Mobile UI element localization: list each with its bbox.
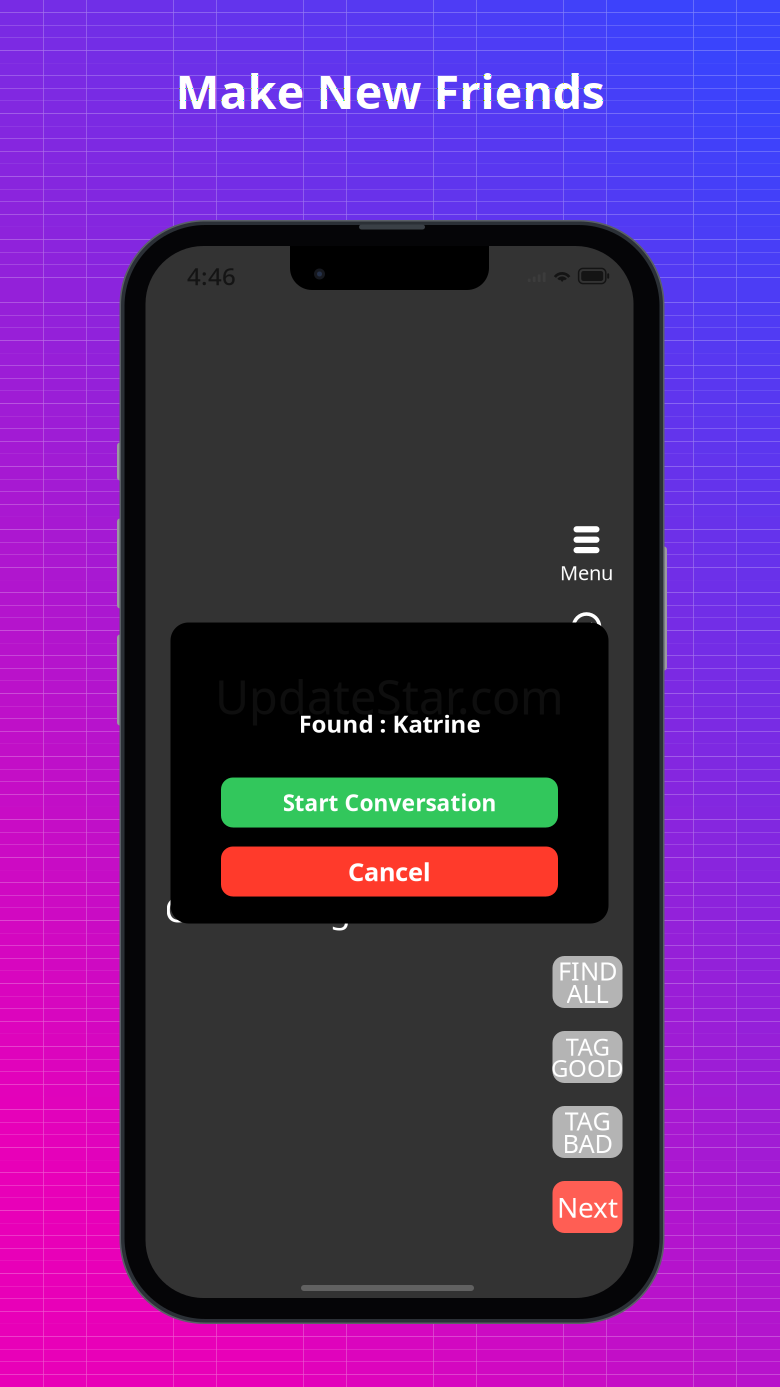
staticText: TAG [564, 1104, 610, 1138]
button[interactable]: TAG [552, 1106, 622, 1158]
button[interactable]: FIND [552, 956, 622, 1008]
staticText: TAG [565, 1030, 609, 1062]
staticText: Connecting… [164, 886, 377, 932]
staticText: Start Conversation [282, 787, 496, 817]
button[interactable]: TAG [552, 1031, 622, 1083]
staticText: Make New Friends [175, 60, 604, 122]
button[interactable]: History [564, 605, 608, 649]
button[interactable]: Next [552, 1181, 622, 1233]
staticText: UpdateStar.com [215, 665, 564, 727]
staticText: Found : Katrine [298, 708, 480, 739]
staticText: Next [557, 1188, 618, 1226]
button[interactable]: Cancel [221, 846, 558, 896]
staticText: BAD [562, 1126, 612, 1160]
staticText: ALL [566, 976, 608, 1010]
staticText: Cancel [348, 855, 431, 888]
staticText: GOOD [551, 1052, 624, 1084]
staticText: Menu [560, 559, 613, 586]
button[interactable]: Menu [547, 526, 625, 586]
staticText: 4:46 [187, 260, 236, 292]
staticText: FIND [558, 954, 617, 988]
button[interactable]: Start Conversation [221, 777, 558, 827]
